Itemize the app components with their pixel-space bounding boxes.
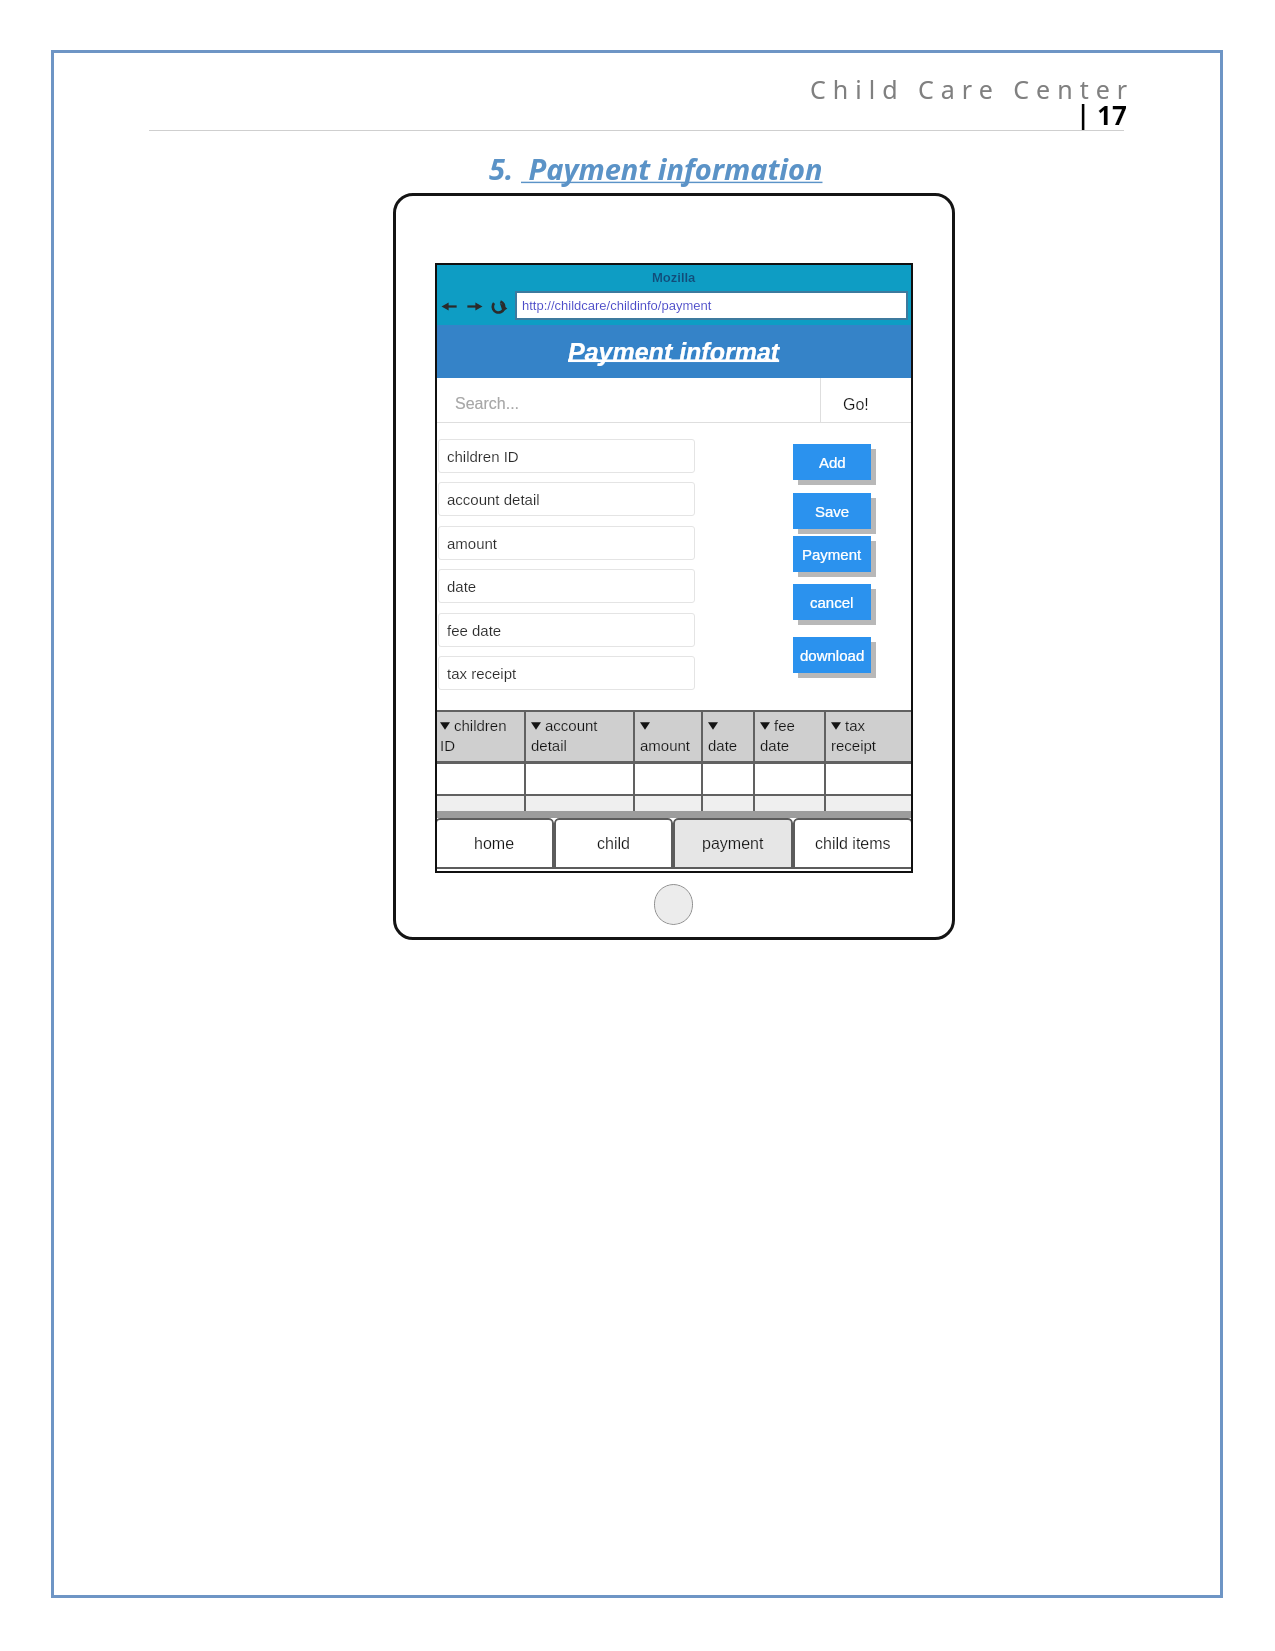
button[interactable]: Home	[654, 884, 693, 925]
button[interactable]: Forward	[462, 291, 487, 321]
button[interactable]: Add	[793, 444, 871, 480]
staticText: Mozilla	[652, 270, 696, 285]
staticText: home	[474, 835, 515, 853]
staticText: account detail	[447, 491, 540, 508]
staticText: Payment	[802, 546, 862, 563]
button[interactable]: download	[793, 637, 871, 673]
staticText: http://childcare/childinfo/payment	[522, 298, 712, 313]
staticText: date	[708, 737, 738, 754]
staticText: amount	[640, 737, 691, 754]
staticText: download	[800, 647, 865, 664]
staticText: 5.	[489, 149, 521, 188]
staticText: children	[454, 717, 507, 734]
staticText: Go!	[843, 396, 869, 414]
staticText: date	[447, 578, 477, 595]
staticText: tax	[845, 717, 866, 734]
staticText: ID	[440, 737, 455, 754]
button[interactable]: home	[435, 818, 554, 869]
staticText: tax receipt	[447, 665, 517, 682]
staticText: Payment informat	[568, 338, 780, 366]
button[interactable]: date	[438, 569, 695, 603]
staticText: Save	[815, 503, 850, 520]
staticText: children ID	[447, 448, 519, 465]
staticText: amount	[447, 535, 498, 552]
button[interactable]: Go!	[821, 378, 913, 422]
staticText: cancel	[810, 594, 854, 611]
button[interactable]: Payment	[793, 536, 871, 572]
staticText: payment	[702, 835, 764, 853]
staticText: fee	[774, 717, 795, 734]
button[interactable]: cancel	[793, 584, 871, 620]
staticText: Add	[819, 454, 846, 471]
button[interactable]: children ID	[438, 439, 695, 473]
button[interactable]: amount	[438, 526, 695, 560]
staticText: detail	[531, 737, 567, 754]
button[interactable]: payment	[673, 818, 793, 869]
button[interactable]: Save	[793, 493, 871, 529]
staticText: receipt	[831, 737, 877, 754]
staticText: Payment information	[521, 149, 823, 188]
staticText: date	[760, 737, 790, 754]
button[interactable]: child items	[793, 818, 913, 869]
button[interactable]: Back	[437, 291, 462, 321]
button[interactable]: Reload	[487, 291, 512, 321]
staticText: Search...	[455, 395, 520, 413]
staticText: child items	[815, 835, 891, 853]
staticText: account	[545, 717, 598, 734]
button[interactable]: fee date	[438, 613, 695, 647]
button[interactable]: child	[554, 818, 673, 869]
staticText: child	[597, 835, 630, 853]
button[interactable]: tax receipt	[438, 656, 695, 690]
staticText: | 17	[1076, 97, 1127, 132]
staticText: fee date	[447, 622, 502, 639]
button[interactable]: account detail	[438, 482, 695, 516]
staticText: Child Care Center	[810, 72, 1135, 106]
